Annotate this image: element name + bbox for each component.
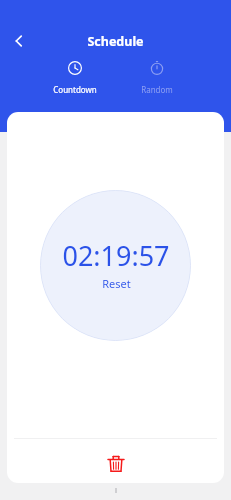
staticText: Random [141,84,173,95]
button[interactable]: Back [4,26,34,56]
staticText: 02:19:57 [62,237,170,274]
button[interactable]: 02:19:57 [40,190,191,341]
staticText: Reset [102,276,131,291]
staticText: Schedule [87,33,144,50]
button[interactable]: Delete [101,449,131,479]
button[interactable]: Countdown [41,57,109,97]
button[interactable]: Random [123,57,191,97]
staticText: Countdown [53,84,97,95]
